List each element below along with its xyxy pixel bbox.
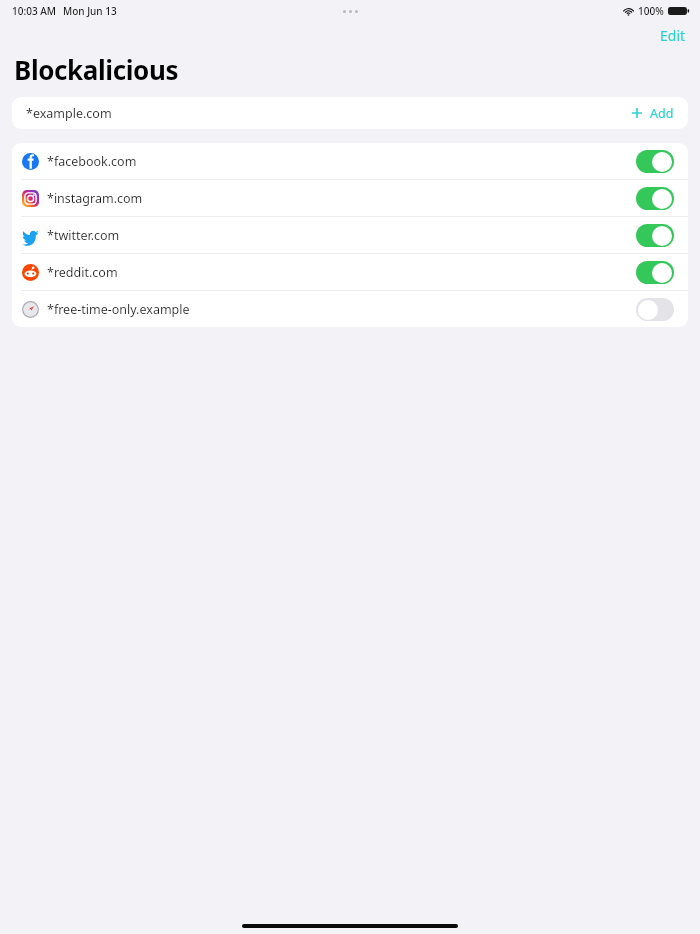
staticText: 100% [638,4,664,18]
button[interactable]: Enabled [636,224,674,247]
button[interactable]: *twitter.com [12,217,688,253]
staticText: *instagram.com [47,190,143,207]
staticText: *example.com [26,105,112,122]
button[interactable]: Enabled [636,187,674,210]
staticText: *twitter.com [47,227,120,244]
button[interactable]: Enabled [636,261,674,284]
button[interactable]: *reddit.com [12,254,688,290]
button[interactable]: Enabled [636,150,674,173]
staticText: *free-time-only.example [47,301,190,318]
staticText: Edit [660,26,686,45]
staticText: Add [650,105,674,122]
button[interactable]: Edit [654,24,692,47]
staticText: *reddit.com [47,264,118,281]
button[interactable]: Disabled [636,298,674,321]
button[interactable]: *instagram.com [12,180,688,216]
staticText: Blockalicious [14,52,179,87]
button[interactable]: *free-time-only.example [12,291,688,327]
staticText: *facebook.com [47,153,137,170]
button[interactable]: *facebook.com [12,143,688,179]
staticText: Mon Jun 13 [63,4,117,18]
staticText: 10:03 AM [12,4,56,18]
button[interactable]: Add [631,97,688,129]
